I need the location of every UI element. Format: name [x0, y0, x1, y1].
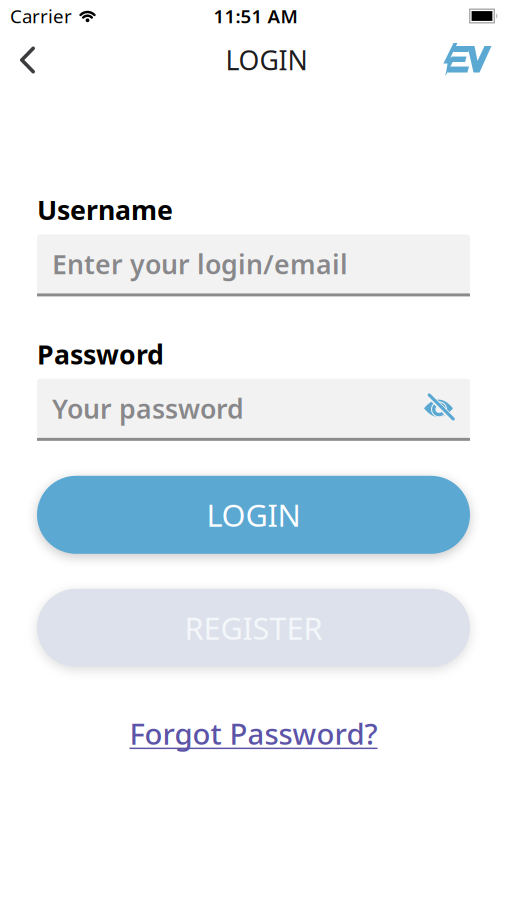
staticText: LOGIN — [206, 494, 300, 535]
button[interactable]: Back — [0, 36, 47, 83]
staticText: Carrier — [10, 4, 72, 28]
staticText: Username — [37, 192, 173, 227]
staticText: Forgot Password? — [129, 714, 377, 753]
button[interactable]: Forgot Password? — [129, 714, 377, 753]
staticText: REGISTER — [184, 607, 322, 648]
staticText: Password — [37, 336, 164, 372]
button[interactable]: Show password — [424, 396, 470, 420]
button[interactable]: REGISTER — [37, 589, 470, 667]
staticText: Your password — [52, 391, 244, 426]
staticText: Enter your login/email — [52, 246, 348, 282]
staticText: LOGIN — [225, 42, 307, 78]
button[interactable]: LOGIN — [37, 476, 470, 554]
staticText: 11:51 AM — [213, 4, 297, 28]
